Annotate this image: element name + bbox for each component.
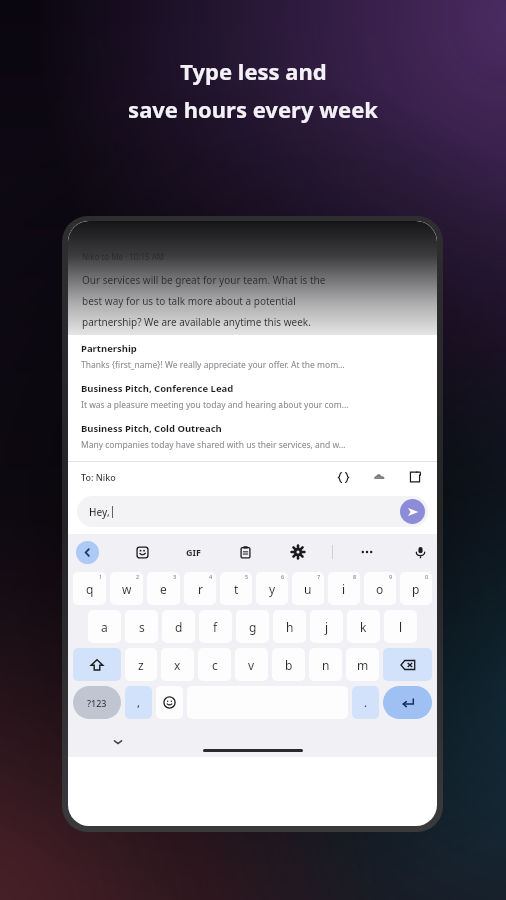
button[interactable]: Business Pitch, Cold Outreach (81, 422, 424, 451)
staticText: Niko to Me · 10:15 AM (82, 251, 165, 262)
staticText: 7 (317, 573, 321, 580)
button[interactable]: q (73, 572, 106, 605)
button[interactable]: . (352, 686, 379, 719)
staticText: j (325, 619, 329, 635)
button[interactable]: Stickers (133, 543, 151, 561)
staticText: y (269, 581, 276, 597)
button[interactable]: f (199, 610, 232, 643)
staticText: , (137, 695, 141, 710)
staticText: l (399, 619, 403, 635)
staticText: q (86, 581, 94, 597)
staticText: k (360, 619, 367, 635)
button[interactable]: a (88, 610, 121, 643)
staticText: 0 (425, 573, 429, 580)
staticText: 6 (281, 573, 285, 580)
button[interactable]: Back (76, 541, 99, 564)
button[interactable]: w (110, 572, 143, 605)
button[interactable]: Business Pitch, Conference Lead (81, 382, 424, 411)
button[interactable]: Enter (383, 686, 432, 719)
button[interactable]: Hide keyboard (110, 734, 126, 750)
staticText: r (198, 581, 203, 597)
staticText: s (139, 619, 145, 635)
button[interactable]: t (220, 572, 252, 605)
staticText: best way for us to talk more about a pot… (82, 294, 296, 308)
button[interactable]: r (184, 572, 216, 605)
button[interactable]: m (346, 648, 379, 681)
button[interactable]: , (125, 686, 152, 719)
button[interactable]: v (235, 648, 268, 681)
button[interactable]: e (147, 572, 180, 605)
button[interactable]: More (358, 543, 376, 561)
staticText: Business Pitch, Cold Outreach (81, 422, 222, 435)
staticText: 8 (353, 573, 357, 580)
button[interactable]: j (310, 610, 343, 643)
staticText: Hey, (89, 505, 110, 519)
button[interactable]: n (309, 648, 342, 681)
button[interactable]: k (347, 610, 380, 643)
staticText: i (342, 581, 346, 597)
button[interactable]: b (272, 648, 305, 681)
button[interactable]: y (256, 572, 288, 605)
button[interactable]: Send (400, 499, 425, 524)
staticText: n (322, 657, 330, 673)
staticText: d (175, 619, 183, 635)
button[interactable]: Expand (406, 468, 424, 486)
button[interactable]: p (400, 572, 432, 605)
staticText: g (249, 619, 257, 635)
staticText: 5 (245, 573, 249, 580)
staticText: 2 (136, 573, 140, 580)
button[interactable]: Attach (370, 468, 388, 486)
staticText: 3 (173, 573, 177, 580)
staticText: b (285, 657, 293, 673)
staticText: Many companies today have shared with us… (81, 439, 346, 451)
button[interactable]: Partnership (81, 342, 424, 371)
staticText: 4 (209, 573, 213, 580)
staticText: o (376, 581, 384, 597)
staticText: t (234, 581, 239, 597)
staticText: e (160, 581, 167, 597)
staticText: Our services will be great for your team… (82, 273, 326, 287)
button[interactable]: l (384, 610, 417, 643)
staticText: Type less and (180, 56, 327, 86)
staticText: save hours every week (128, 94, 378, 124)
staticText: partnership? We are available anytime th… (82, 315, 311, 329)
button[interactable]: Hey, (77, 496, 428, 527)
staticText: v (248, 657, 255, 673)
staticText: w (122, 581, 132, 597)
button[interactable]: ?123 (73, 686, 121, 719)
staticText: Partnership (81, 342, 137, 355)
button[interactable]: g (236, 610, 269, 643)
button[interactable]: x (161, 648, 194, 681)
button[interactable]: Insert variable (334, 468, 352, 486)
staticText: f (213, 619, 218, 635)
button[interactable]: h (273, 610, 306, 643)
staticText: m (357, 657, 369, 673)
button[interactable]: d (162, 610, 195, 643)
staticText: 1 (99, 573, 103, 580)
button[interactable]: GIF (186, 546, 201, 558)
staticText: ?123 (87, 697, 107, 709)
button[interactable]: Shift (73, 648, 121, 681)
button[interactable]: i (328, 572, 360, 605)
staticText: x (174, 657, 181, 673)
staticText: 9 (389, 573, 393, 580)
staticText: GIF (186, 546, 201, 558)
staticText: Business Pitch, Conference Lead (81, 382, 234, 395)
button[interactable]: Clipboard (236, 543, 254, 561)
staticText: . (364, 695, 367, 710)
staticText: a (101, 619, 108, 635)
button[interactable]: s (125, 610, 158, 643)
button[interactable]: c (198, 648, 231, 681)
button[interactable]: o (364, 572, 396, 605)
staticText: Thanks {first_name}! We really appreciat… (81, 359, 345, 371)
staticText: It was a pleasure meeting you today and … (81, 399, 349, 411)
button[interactable]: Backspace (383, 648, 432, 681)
staticText: p (412, 581, 420, 597)
button[interactable]: Emoji (156, 686, 183, 719)
button[interactable]: z (125, 648, 157, 681)
button[interactable]: Voice input (411, 543, 429, 561)
button[interactable]: Settings (289, 543, 307, 561)
staticText: h (286, 619, 294, 635)
button[interactable]: u (292, 572, 324, 605)
